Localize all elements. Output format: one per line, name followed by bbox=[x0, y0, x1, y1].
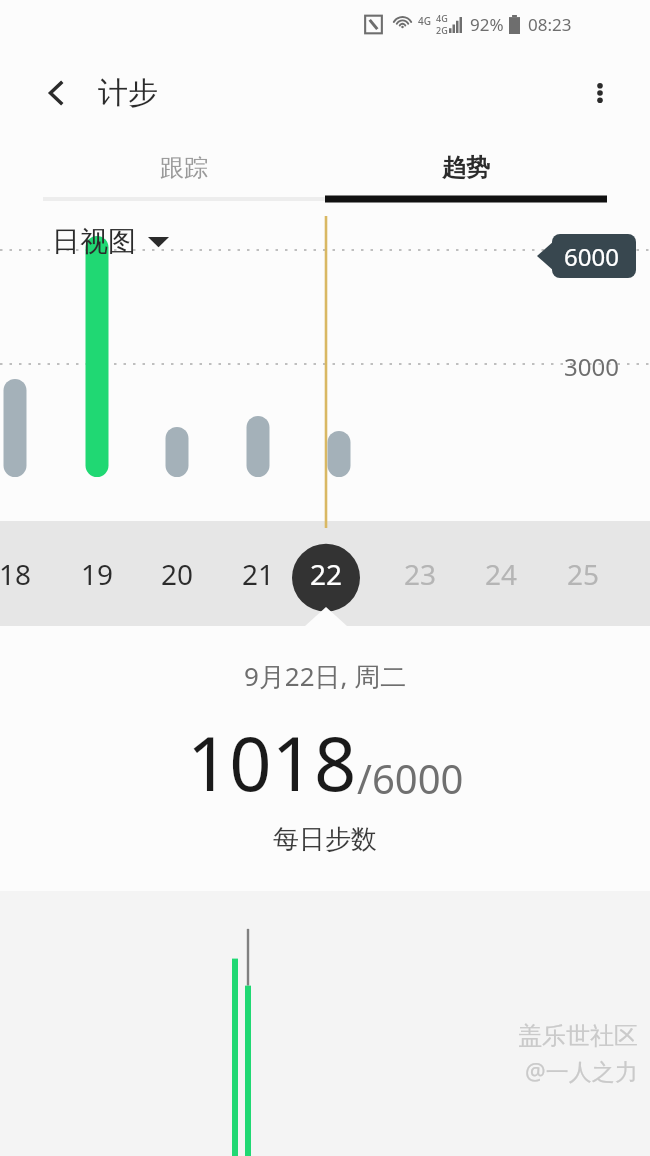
staticText: 4G bbox=[436, 12, 448, 24]
staticText: 18 bbox=[0, 555, 32, 593]
button[interactable]: 跟踪 bbox=[43, 138, 325, 216]
staticText: 计步 bbox=[98, 74, 158, 112]
staticText: 1018 bbox=[187, 712, 357, 813]
button[interactable]: 24 bbox=[467, 540, 535, 608]
staticText: 9月22日, 周二 bbox=[244, 658, 407, 694]
button[interactable]: 23 bbox=[386, 540, 454, 608]
button[interactable]: 19 bbox=[63, 540, 131, 608]
staticText: /6000 bbox=[357, 751, 464, 805]
button[interactable]: 趋势 bbox=[325, 138, 607, 216]
button[interactable]: 22 bbox=[292, 540, 360, 608]
button[interactable]: 25 bbox=[549, 540, 617, 608]
staticText: 20 bbox=[161, 555, 194, 593]
staticText: 92% bbox=[470, 13, 504, 36]
staticText: @一人之力 bbox=[525, 1055, 638, 1086]
staticText: 日视图 bbox=[52, 224, 136, 259]
staticText: 2G bbox=[436, 24, 448, 36]
staticText: 19 bbox=[81, 555, 114, 593]
button[interactable]: Back bbox=[28, 65, 84, 121]
staticText: 跟踪 bbox=[160, 153, 208, 183]
staticText: 4G bbox=[418, 14, 431, 28]
staticText: 21 bbox=[242, 555, 275, 593]
staticText: 08:23 bbox=[528, 13, 572, 36]
button[interactable]: 日视图 bbox=[52, 224, 169, 259]
button[interactable]: 20 bbox=[143, 540, 211, 608]
staticText: 趋势 bbox=[442, 153, 490, 183]
staticText: 25 bbox=[567, 555, 600, 593]
staticText: 每日步数 bbox=[273, 823, 377, 856]
button[interactable]: More options bbox=[572, 65, 628, 121]
staticText: 23 bbox=[404, 555, 437, 593]
staticText: 盖乐世社区 bbox=[518, 1021, 638, 1051]
staticText: 3000 bbox=[564, 350, 619, 383]
button[interactable]: 18 bbox=[0, 540, 49, 608]
button[interactable]: 21 bbox=[224, 540, 292, 608]
staticText: 24 bbox=[485, 555, 518, 593]
staticText: 22 bbox=[310, 555, 343, 593]
staticText: 6000 bbox=[564, 240, 619, 273]
